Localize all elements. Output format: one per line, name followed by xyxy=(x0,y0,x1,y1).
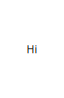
staticText: Hi xyxy=(26,42,37,56)
